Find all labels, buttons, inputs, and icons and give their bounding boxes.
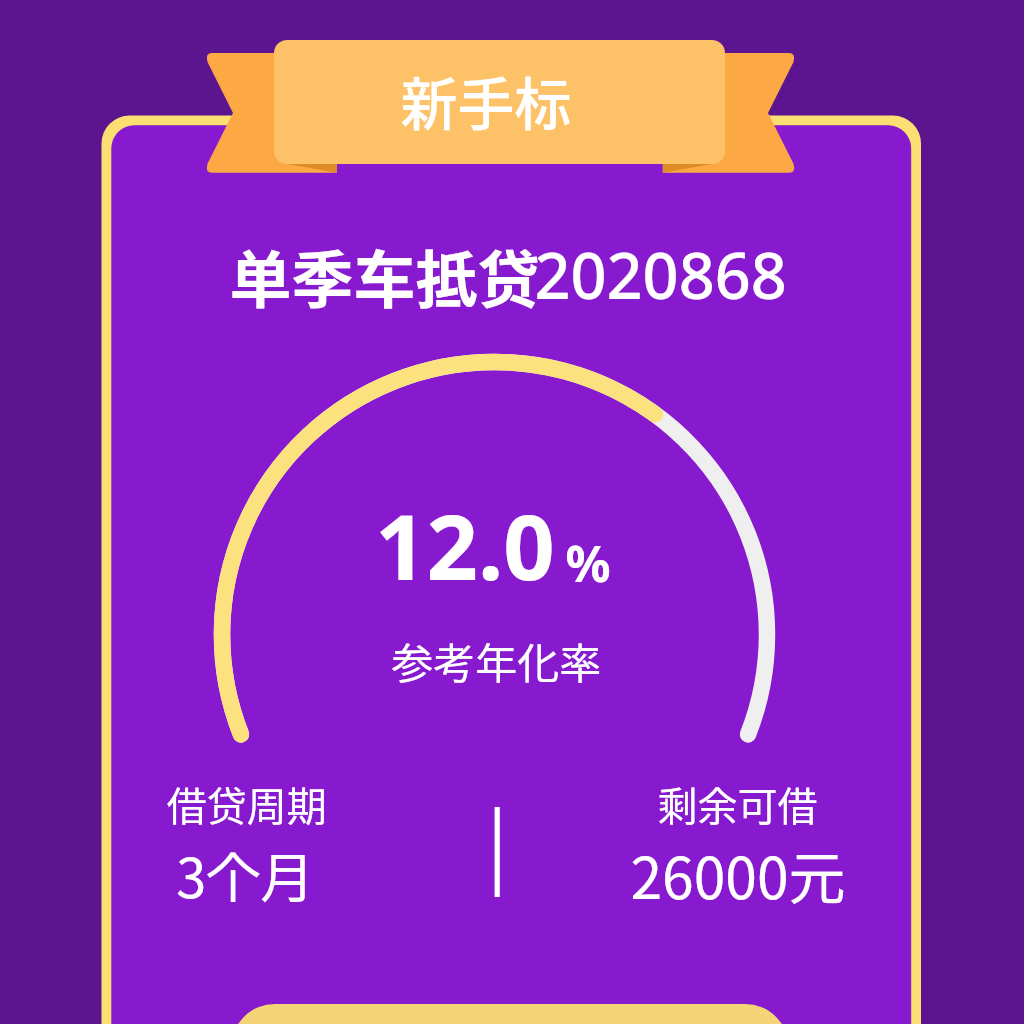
button[interactable]: 单季车抵贷2020868 产品详情 [102,116,922,1004]
button[interactable]: 立即借款 [231,1004,789,1024]
button[interactable]: 新手标 [205,40,796,173]
